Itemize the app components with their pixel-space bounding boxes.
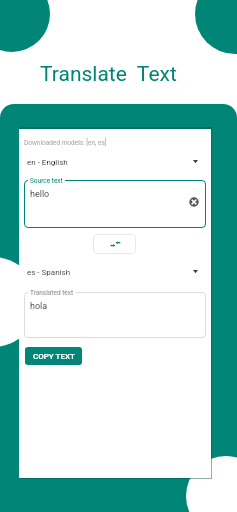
staticText: Translate Text <box>40 62 177 87</box>
button[interactable]: Swap languages <box>93 234 136 254</box>
button[interactable]: Translated text <box>24 288 206 334</box>
staticText: en - English <box>27 158 200 167</box>
staticText: Downloaded models: [en, es] <box>24 139 107 147</box>
staticText: hola <box>30 301 48 312</box>
staticText: Source text <box>30 177 63 185</box>
staticText: Translated text <box>30 289 74 297</box>
button[interactable]: Source text <box>24 176 206 224</box>
staticText: hello <box>30 189 50 200</box>
staticText: COPY TEXT <box>33 352 75 361</box>
button[interactable]: COPY TEXT <box>25 347 82 365</box>
staticText: es - Spanish <box>27 268 200 277</box>
button[interactable]: en - English <box>23 152 205 172</box>
button[interactable]: es - Spanish <box>23 262 205 282</box>
button[interactable]: Clear text <box>189 197 199 207</box>
